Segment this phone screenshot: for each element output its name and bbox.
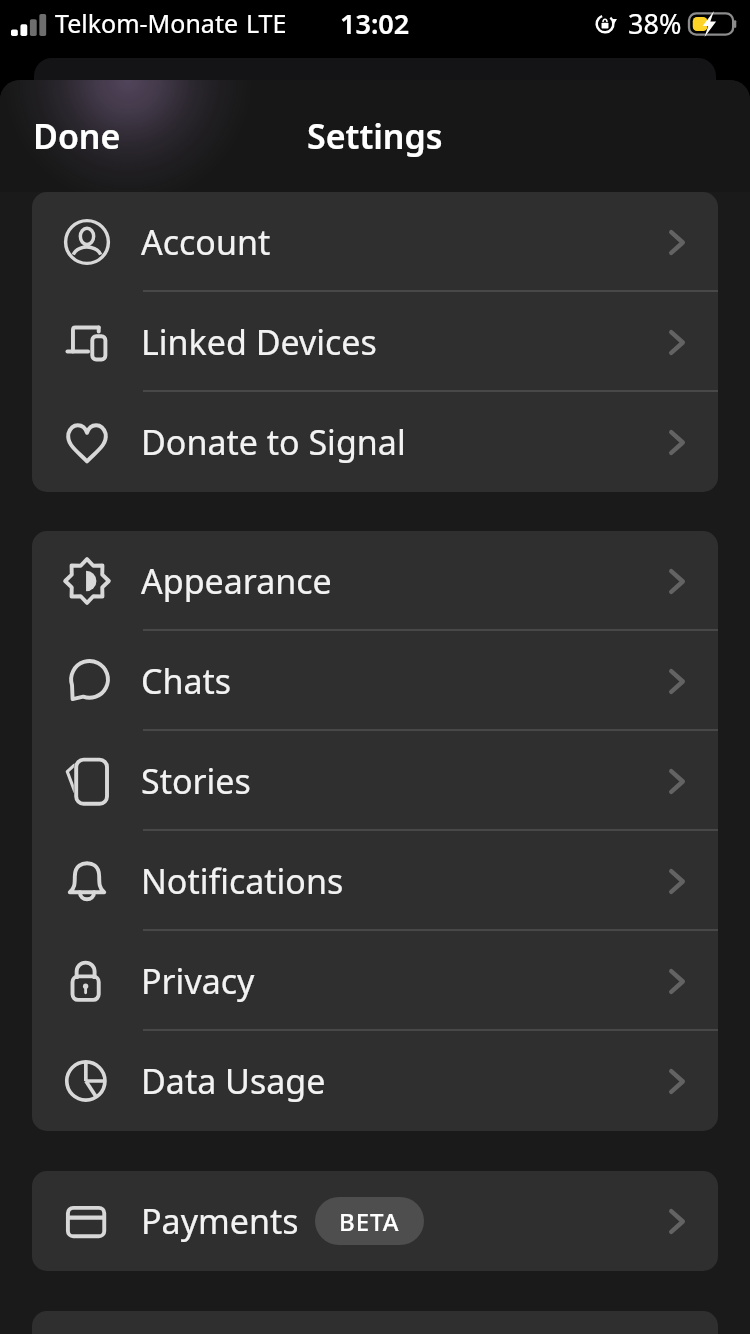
staticText: 38%	[628, 5, 682, 42]
button[interactable]: Notifications	[32, 831, 718, 931]
staticText: LTE	[246, 6, 287, 40]
staticText: Chats	[141, 658, 232, 704]
staticText: Appearance	[141, 558, 332, 604]
button[interactable]: Appearance	[32, 531, 718, 631]
staticText: Donate to Signal	[141, 419, 406, 465]
staticText: Notifications	[141, 858, 344, 904]
button[interactable]: Done	[0, 101, 141, 171]
button[interactable]: Privacy	[32, 931, 718, 1031]
button[interactable]: Account	[32, 192, 718, 292]
staticText: Stories	[141, 758, 251, 804]
staticText: Done	[33, 113, 121, 159]
button[interactable]: Linked Devices	[32, 292, 718, 392]
staticText: Linked Devices	[141, 319, 377, 365]
button[interactable]: Stories	[32, 731, 718, 831]
button[interactable]: Donate to Signal	[32, 392, 718, 492]
staticText: Data Usage	[141, 1058, 326, 1104]
button[interactable]: Payments	[32, 1171, 718, 1271]
button[interactable]: Chats	[32, 631, 718, 731]
staticText: Account	[141, 219, 271, 265]
staticText: Telkom-Monate	[55, 6, 239, 40]
button[interactable]: Data Usage	[32, 1031, 718, 1131]
staticText: Payments	[141, 1198, 299, 1244]
staticText: 13:02	[340, 5, 410, 42]
staticText: Privacy	[141, 958, 255, 1004]
staticText: BETA	[339, 1205, 400, 1238]
staticText: Settings	[307, 113, 443, 159]
